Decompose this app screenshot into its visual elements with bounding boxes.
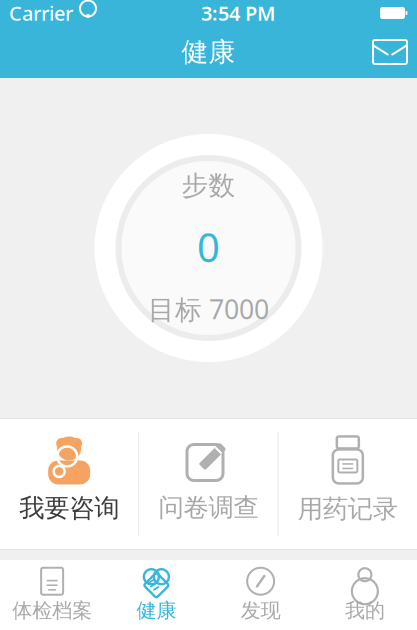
- staticText: Carrier: [9, 0, 73, 26]
- staticText: 健康: [136, 598, 176, 623]
- staticText: 目标 7000: [148, 291, 269, 327]
- staticText: 我要咨询: [19, 492, 119, 523]
- staticText: 0: [197, 220, 220, 273]
- staticText: 3:54 PM: [201, 0, 276, 26]
- button[interactable]: 发现: [208, 562, 313, 628]
- button[interactable]: 问卷调查: [139, 419, 278, 549]
- staticText: 问卷调查: [158, 492, 258, 523]
- button[interactable]: 健康: [104, 562, 208, 628]
- button[interactable]: 体检档案: [0, 562, 104, 628]
- staticText: 体检档案: [12, 598, 92, 623]
- staticText: 健康: [181, 36, 235, 68]
- staticText: 步数: [181, 169, 235, 202]
- staticText: 发现: [241, 598, 281, 623]
- button[interactable]: 用药记录: [279, 419, 417, 549]
- button[interactable]: 我要咨询: [0, 419, 138, 549]
- button[interactable]: Messages: [363, 30, 417, 74]
- staticText: 用药记录: [298, 493, 398, 524]
- staticText: 我的: [345, 598, 385, 623]
- button[interactable]: 我的: [313, 562, 417, 628]
